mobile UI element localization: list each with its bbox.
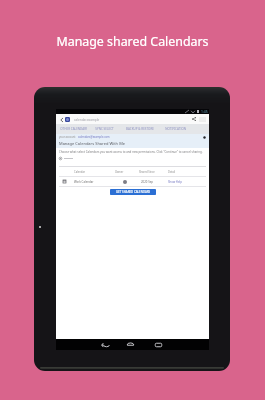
- staticText: GET SHARED CALENDARS: [116, 190, 151, 194]
- staticText: 1:45: [201, 109, 208, 114]
- button[interactable]: Back: [59, 117, 64, 122]
- staticText: your account: [59, 135, 76, 139]
- staticText: Calendar: [74, 170, 85, 174]
- staticText: 2020 Sep: [141, 180, 153, 184]
- button[interactable]: GET SHARED CALENDARS: [110, 189, 156, 195]
- button[interactable]: Share: [191, 116, 197, 122]
- button[interactable]: NOTIFICATIONS: [165, 124, 186, 134]
- staticText: calendars@example.com: [78, 135, 110, 139]
- staticText: Manage Calendars Shared With Me: [59, 141, 126, 146]
- button[interactable]: Back: [99, 339, 111, 350]
- staticText: SYNC SELECT: [95, 127, 114, 131]
- staticText: Shared Since: [139, 170, 155, 174]
- button[interactable]: Recents: [152, 339, 164, 350]
- button[interactable]: Settings: [202, 135, 206, 139]
- staticText: Owner: [115, 170, 124, 174]
- staticText: Manage shared Calendars: [0, 33, 265, 50]
- button[interactable]: OTHER CALENDARS: [60, 124, 87, 134]
- button[interactable]: BACKUP & RESTORE: [122, 124, 158, 134]
- staticText: BACKUP & RESTORE: [126, 127, 154, 131]
- button[interactable]: calendar.example: [72, 117, 189, 122]
- button[interactable]: Work Calendar: [59, 177, 206, 186]
- staticText: NOTIFICATIONS: [165, 127, 186, 131]
- staticText: Choose what select Calendars you want ac…: [59, 150, 203, 154]
- button[interactable]: SYNC SELECT: [94, 124, 115, 134]
- staticText: OTHER CALENDARS: [60, 127, 87, 131]
- staticText: Detail: [168, 170, 176, 174]
- staticText: Show Help: [168, 180, 182, 184]
- staticText: Work Calendar: [74, 180, 94, 184]
- button[interactable]: Home: [124, 339, 136, 350]
- staticText: calendar.example: [74, 118, 100, 122]
